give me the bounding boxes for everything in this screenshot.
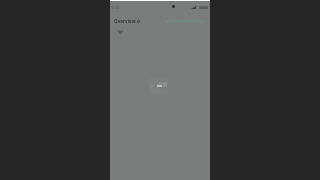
other: Info bbox=[137, 20, 140, 23]
button[interactable]: Expand bbox=[117, 30, 124, 35]
staticText: Sync with Drive bbox=[170, 18, 205, 25]
staticText: 9:30 bbox=[111, 5, 120, 11]
button[interactable]: Sync with Drive bbox=[166, 18, 205, 25]
staticText: Overview bbox=[114, 18, 136, 24]
